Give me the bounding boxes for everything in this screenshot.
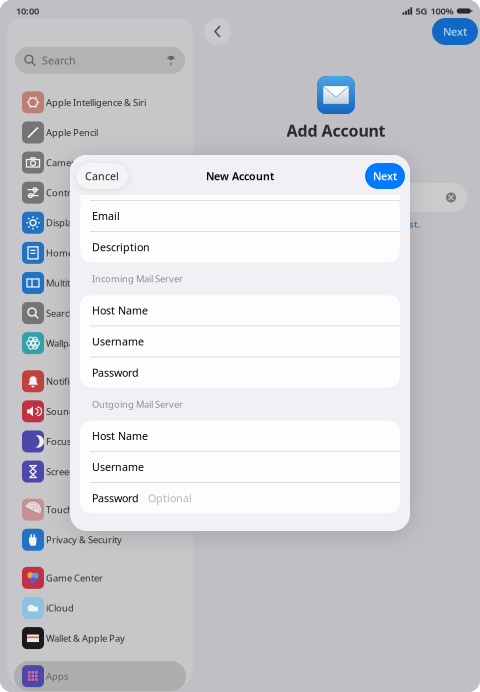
staticText: Focus [46,435,71,448]
button[interactable]: Notifications [7,366,193,396]
staticText: Outgoing Mail Server [92,398,183,410]
staticText: Username [92,460,144,474]
button[interactable]: Host Name [80,295,400,325]
button[interactable]: Username [80,326,400,357]
staticText: Next [373,169,397,183]
staticText: Username [92,334,144,349]
button[interactable]: Apps [7,661,193,691]
button[interactable]: Password [80,357,400,388]
staticText: Next [443,24,467,39]
staticText: Cancel [85,169,119,183]
staticText: Control Center [46,186,110,199]
button[interactable]: Clear text [446,192,456,202]
button[interactable]: Display & Brightness [7,208,193,238]
staticText: 10:00 [16,5,39,17]
button[interactable]: Apple Pencil [7,117,193,147]
staticText: Apple Intelligence & Siri [46,96,146,109]
staticText: Email [92,209,120,223]
staticText: Home Screen & App Library [46,247,166,259]
button[interactable]: iCloud [7,593,193,623]
staticText: Add Account [286,120,385,141]
button[interactable]: Control Center [7,178,193,208]
button[interactable]: Next [432,18,478,45]
staticText: Host Name [92,303,148,317]
button[interactable]: Search [15,47,185,74]
button[interactable]: Cancel [76,163,128,189]
staticText: Description [92,240,150,254]
staticText: iCloud [46,602,74,614]
button[interactable]: Host Name [80,421,400,451]
staticText: Incoming Mail Server [92,272,183,285]
staticText: Sounds [46,405,79,418]
staticText: Password [92,491,139,505]
staticText: Game Center [46,572,103,584]
button[interactable]: Wallpaper [7,328,193,358]
staticText: New Account [206,169,274,183]
button[interactable]: Home Screen & App Library [7,238,193,268]
staticText: Tap to add this account to your list. [260,218,421,230]
button[interactable]: Multitasking & Gestures [7,268,193,298]
button[interactable]: Username [80,452,400,482]
button[interactable]: Touch ID & Passcode [7,495,193,525]
staticText: Wallpaper [46,337,89,349]
button[interactable]: Game Center [7,563,193,593]
staticText: Apps [46,670,68,682]
button[interactable]: Back [204,18,231,45]
staticText: Host Name [92,429,148,443]
staticText: Password [92,365,139,380]
staticText: Search [42,53,76,67]
button[interactable]: Search [7,298,193,328]
staticText: Optional [148,491,192,505]
button[interactable]: Next [365,163,405,189]
button[interactable]: Focus [7,426,193,456]
button[interactable]: Wallet & Apple Pay [7,623,193,653]
staticText: Search [46,307,75,319]
staticText: Display & Brightness [46,217,134,229]
button[interactable]: Email [80,201,400,231]
staticText: Touch ID & Passcode [46,503,136,516]
staticText: Notifications [46,375,100,387]
button[interactable]: Password [80,483,400,513]
button[interactable]: Screen Time [7,456,193,487]
button[interactable]: Sounds [7,396,193,426]
staticText: Wallet & Apple Pay [46,632,125,644]
staticText: Screen Time [46,465,98,478]
staticText: Apple Pencil [46,126,98,139]
staticText: Camera [46,156,80,169]
button[interactable]: Camera [7,147,193,178]
button[interactable]: Apple Intelligence & Siri [7,87,193,117]
button[interactable]: Description [80,232,400,262]
staticText: Multitasking & Gestures [46,277,147,289]
staticText: 100% [430,5,453,17]
button[interactable]: Privacy & Security [7,525,193,555]
staticText: 5G [415,5,427,17]
staticText: Privacy & Security [46,534,122,546]
